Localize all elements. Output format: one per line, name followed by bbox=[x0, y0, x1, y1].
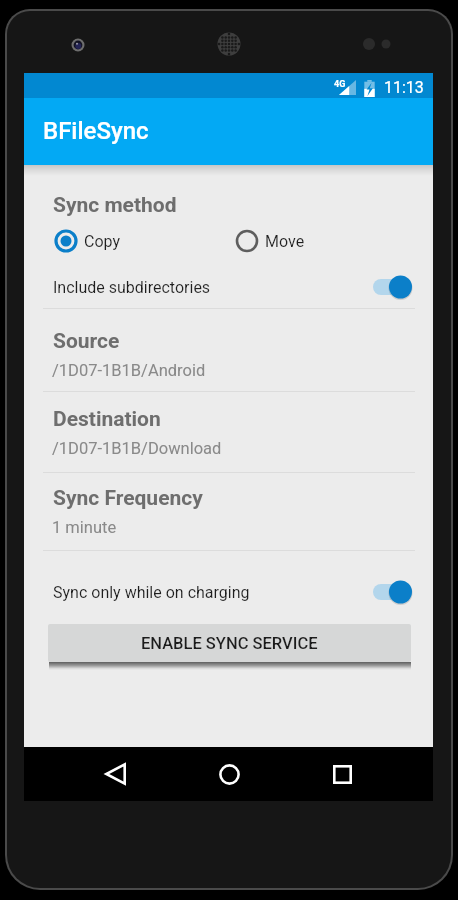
button[interactable]: Recent apps bbox=[318, 747, 366, 801]
staticText: /1D07-1B1B/Download bbox=[52, 439, 222, 458]
staticText: 1 minute bbox=[52, 518, 117, 537]
button[interactable]: Sync only while on charging bbox=[24, 571, 433, 613]
button[interactable]: Move bbox=[235, 227, 305, 255]
staticText: BFileSync bbox=[43, 117, 149, 145]
button[interactable]: Destination bbox=[24, 403, 433, 461]
staticText: Sync method bbox=[53, 193, 177, 218]
button[interactable]: Include subdirectories bbox=[24, 266, 433, 308]
staticText: Source bbox=[53, 329, 120, 354]
button[interactable]: Back bbox=[91, 747, 139, 801]
button[interactable]: Home bbox=[205, 747, 253, 801]
staticText: Move bbox=[265, 232, 305, 251]
staticText: 4G bbox=[334, 79, 346, 90]
staticText: /1D07-1B1B/Android bbox=[52, 361, 206, 380]
staticText: Include subdirectories bbox=[53, 278, 211, 297]
button[interactable]: Sync Frequency bbox=[24, 482, 433, 540]
staticText: ENABLE SYNC SERVICE bbox=[141, 634, 318, 653]
staticText: 11:13 bbox=[384, 78, 424, 97]
button[interactable]: Copy bbox=[54, 227, 121, 255]
button[interactable]: ENABLE SYNC SERVICE bbox=[48, 624, 411, 662]
staticText: Sync Frequency bbox=[53, 486, 203, 511]
staticText: Sync only while on charging bbox=[53, 583, 250, 602]
staticText: Copy bbox=[84, 232, 121, 251]
staticText: Destination bbox=[53, 407, 161, 432]
button[interactable]: Source bbox=[24, 325, 433, 383]
